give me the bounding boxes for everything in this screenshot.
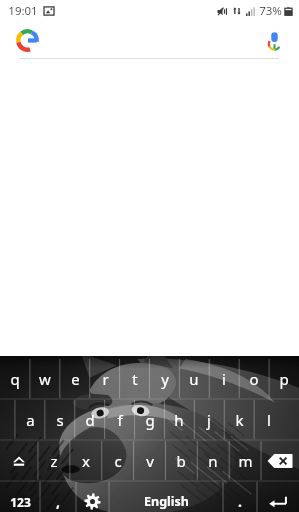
button[interactable]: Voice search: [261, 27, 287, 53]
staticText: t: [132, 369, 138, 389]
staticText: 73%: [259, 3, 282, 19]
staticText: q: [10, 369, 20, 389]
button[interactable]: b: [165, 440, 197, 481]
staticText: x: [82, 451, 90, 471]
button[interactable]: English: [109, 481, 223, 512]
button[interactable]: j: [194, 399, 224, 440]
staticText: a: [26, 410, 35, 430]
staticText: z: [50, 451, 58, 471]
staticText: y: [161, 369, 169, 389]
staticText: 19:01: [8, 3, 38, 19]
button[interactable]: m: [229, 440, 261, 481]
staticText: m: [238, 451, 253, 471]
button[interactable]: p: [269, 358, 299, 399]
button[interactable]: k: [224, 399, 254, 440]
staticText: u: [189, 369, 199, 389]
button[interactable]: u: [179, 358, 209, 399]
button[interactable]: Shift: [0, 440, 38, 481]
staticText: v: [146, 451, 154, 471]
button[interactable]: r: [90, 358, 120, 399]
button[interactable]: x: [70, 440, 102, 481]
button[interactable]: e: [60, 358, 90, 399]
button[interactable]: t: [120, 358, 150, 399]
button[interactable]: Google: [14, 27, 40, 53]
staticText: s: [56, 410, 64, 430]
staticText: e: [71, 369, 80, 389]
staticText: .: [238, 492, 242, 511]
staticText: ,: [56, 492, 60, 511]
staticText: h: [174, 410, 184, 430]
button[interactable]: s: [45, 399, 75, 440]
staticText: d: [85, 410, 95, 430]
staticText: g: [145, 410, 155, 430]
staticText: i: [222, 369, 226, 389]
staticText: English: [144, 493, 189, 510]
button[interactable]: w: [30, 358, 60, 399]
button[interactable]: ,: [40, 481, 76, 512]
staticText: p: [279, 369, 289, 389]
button[interactable]: .: [223, 481, 257, 512]
staticText: o: [249, 369, 259, 389]
staticText: b: [176, 451, 186, 471]
staticText: 123: [10, 494, 31, 510]
button[interactable]: q: [0, 358, 30, 399]
button[interactable]: f: [105, 399, 135, 440]
staticText: j: [207, 410, 211, 430]
button[interactable]: Settings: [76, 481, 109, 512]
button[interactable]: z: [38, 440, 70, 481]
staticText: c: [114, 451, 122, 471]
staticText: l: [267, 410, 271, 430]
button[interactable]: y: [150, 358, 180, 399]
button[interactable]: v: [134, 440, 166, 481]
staticText: f: [117, 410, 123, 430]
button[interactable]: l: [254, 399, 284, 440]
staticText: n: [208, 451, 218, 471]
button[interactable]: c: [102, 440, 134, 481]
button[interactable]: a: [15, 399, 45, 440]
button[interactable]: n: [197, 440, 229, 481]
button[interactable]: i: [209, 358, 239, 399]
button[interactable]: 123: [0, 481, 40, 512]
button[interactable]: d: [75, 399, 105, 440]
button[interactable]: h: [164, 399, 194, 440]
button[interactable]: o: [239, 358, 269, 399]
button[interactable]: Backspace: [261, 440, 299, 481]
staticText: w: [39, 369, 51, 389]
button[interactable]: Enter: [257, 481, 299, 512]
staticText: k: [235, 410, 244, 430]
button[interactable]: g: [135, 399, 165, 440]
staticText: r: [102, 369, 109, 389]
